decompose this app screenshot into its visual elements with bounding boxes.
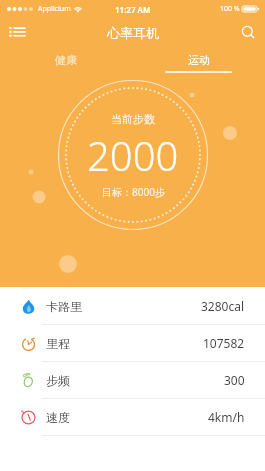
button[interactable]: Search bbox=[231, 18, 265, 47]
staticText: 300 bbox=[224, 372, 245, 388]
staticText: 心率耳机 bbox=[107, 25, 159, 41]
staticText: 4km/h bbox=[208, 409, 245, 425]
button[interactable]: 步频 bbox=[0, 362, 265, 399]
button[interactable]: 速度 bbox=[0, 399, 265, 436]
staticText: 100 % bbox=[220, 4, 240, 14]
staticText: 目标：8000步 bbox=[102, 185, 165, 199]
staticText: 当前步数 bbox=[111, 112, 155, 126]
button[interactable]: 健康 bbox=[0, 47, 132, 73]
staticText: Applicium bbox=[38, 4, 71, 14]
staticText: 2000 bbox=[87, 128, 179, 182]
staticText: 健康 bbox=[55, 53, 77, 67]
staticText: 步频 bbox=[46, 373, 70, 388]
staticText: 速度 bbox=[46, 410, 70, 425]
button[interactable]: 卡路里 bbox=[0, 288, 265, 325]
staticText: 3280cal bbox=[201, 298, 245, 314]
button[interactable]: Menu bbox=[0, 18, 34, 47]
staticText: 卡路里 bbox=[46, 299, 82, 314]
staticText: 107582 bbox=[203, 335, 245, 351]
staticText: 11:27 AM bbox=[115, 4, 151, 15]
button[interactable]: 里程 bbox=[0, 325, 265, 362]
staticText: 里程 bbox=[46, 336, 70, 351]
button[interactable]: 运动 bbox=[132, 47, 265, 73]
staticText: 运动 bbox=[188, 53, 210, 67]
